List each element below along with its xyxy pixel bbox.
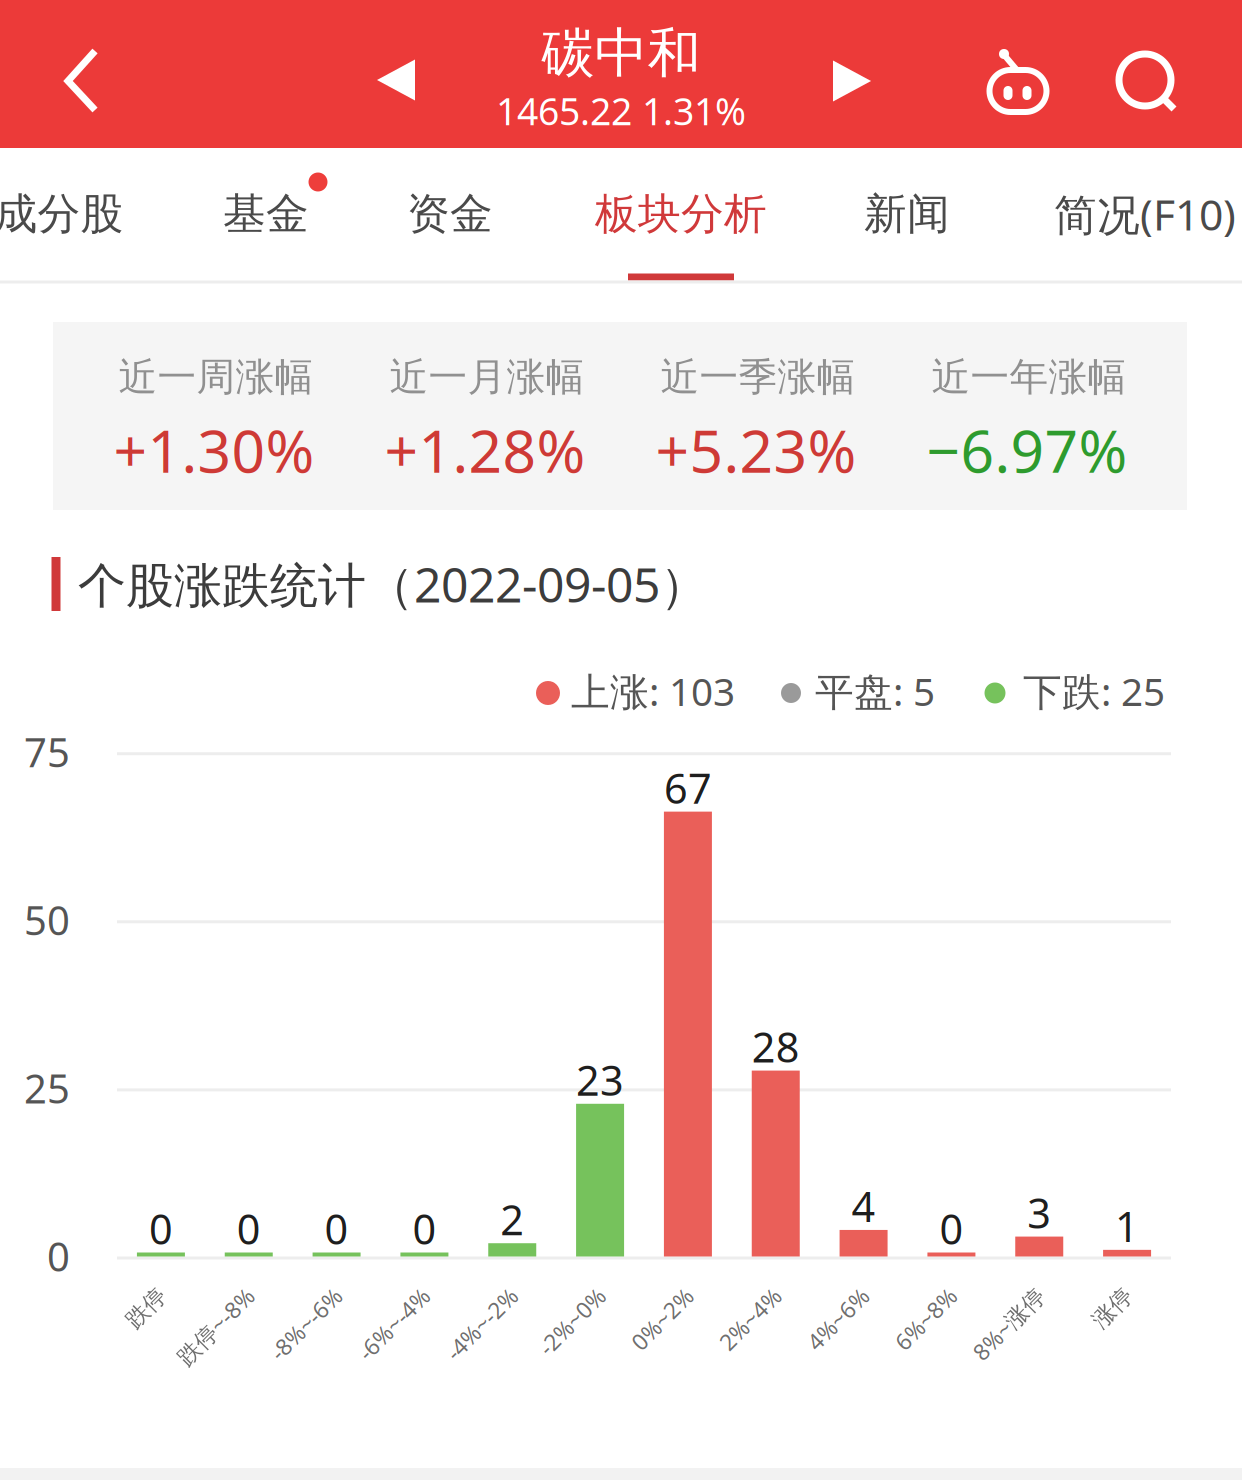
staticText: 板块分析 [595, 188, 767, 240]
staticText: 4 [852, 1178, 876, 1233]
button[interactable]: 资金 [375, 148, 525, 280]
staticText: -2%~0% [507, 1281, 591, 1311]
staticText: 4%~6% [778, 1281, 855, 1311]
staticText: 近一季涨幅 [660, 353, 855, 401]
staticText: -4%~-2% [412, 1281, 503, 1311]
staticText: 近一年涨幅 [931, 353, 1126, 401]
staticText: 2 [500, 1192, 524, 1247]
staticText: 平盘: 5 [815, 665, 935, 717]
button[interactable]: AI assistant [953, 6, 1083, 154]
staticText: 67 [664, 760, 712, 815]
staticText: 个股涨跌统计（2022-09-05） [78, 552, 708, 616]
staticText: 上涨: 103 [571, 665, 735, 717]
staticText: -8%~-6% [237, 1281, 328, 1311]
staticText: 28 [752, 1019, 800, 1074]
staticText: −6.97% [926, 411, 1127, 489]
staticText: 25 [24, 1061, 70, 1114]
staticText: +1.28% [384, 411, 585, 489]
staticText: 近一周涨幅 [118, 353, 313, 401]
staticText: 跌停 [106, 1282, 152, 1310]
staticText: -6%~-4% [324, 1281, 415, 1311]
staticText: 2%~4% [690, 1281, 767, 1311]
staticText: 下跌: 25 [1023, 665, 1165, 717]
staticText: 新闻 [864, 188, 950, 240]
button[interactable]: 板块分析 [586, 148, 776, 280]
staticText: 0 [237, 1201, 261, 1256]
staticText: 1 [1115, 1198, 1139, 1253]
button[interactable]: Next stock [802, 7, 902, 155]
staticText: 0 [149, 1201, 173, 1256]
button[interactable]: Back [17, 7, 147, 155]
staticText: 简况(F10) [1054, 186, 1236, 242]
staticText: 跌停~-8% [142, 1281, 240, 1311]
staticText: 成分股 [0, 188, 123, 240]
staticText: 0 [325, 1201, 349, 1256]
staticText: 8%~涨停 [939, 1281, 1030, 1311]
button[interactable]: 成分股 [0, 148, 139, 280]
staticText: 3 [1027, 1185, 1051, 1240]
button[interactable]: 新闻 [832, 148, 982, 280]
button[interactable]: Search [1084, 10, 1214, 158]
staticText: 0%~2% [602, 1281, 679, 1311]
staticText: 1465.22 1.31% [496, 86, 746, 136]
staticText: 碳中和 [541, 20, 700, 86]
button[interactable]: Previous stock [346, 6, 446, 154]
staticText: 涨停 [1072, 1282, 1118, 1310]
staticText: +5.23% [655, 411, 856, 489]
staticText: 0 [47, 1229, 70, 1282]
staticText: 近一月涨幅 [389, 353, 584, 401]
staticText: 23 [576, 1052, 624, 1107]
button[interactable]: 简况(F10) [1045, 148, 1242, 280]
staticText: 0 [412, 1201, 436, 1256]
staticText: 0 [939, 1201, 963, 1256]
staticText: 基金 [223, 188, 309, 240]
staticText: 50 [24, 893, 70, 946]
button[interactable]: 基金 [191, 148, 341, 280]
staticText: 75 [24, 725, 70, 778]
staticText: +1.30% [113, 411, 314, 489]
staticText: 6%~8% [865, 1281, 942, 1311]
staticText: 资金 [407, 188, 493, 240]
